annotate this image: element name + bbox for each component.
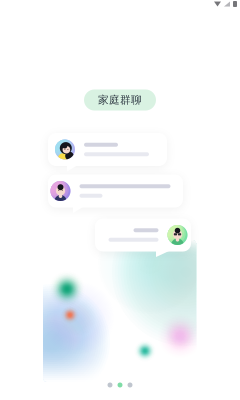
button[interactable]: 家庭群聊 — [84, 89, 156, 110]
staticText: 家庭群聊 — [98, 93, 142, 106]
